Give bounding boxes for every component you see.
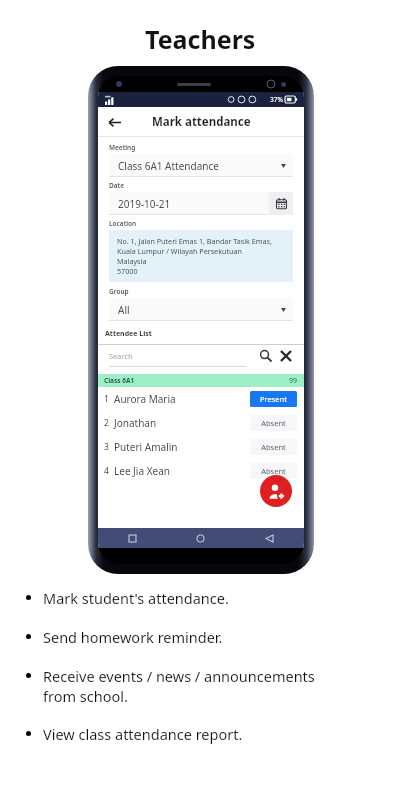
staticText: Teachers [145, 22, 256, 56]
staticText: Class 6A1 [104, 376, 135, 385]
button[interactable]: Back [103, 111, 125, 133]
staticText: Mark attendance [152, 114, 251, 130]
staticText: Attendee List [105, 329, 152, 339]
staticText: Absent [261, 418, 286, 428]
staticText: View class attendance report. [43, 724, 243, 744]
staticText: Date [109, 181, 125, 190]
staticText: All [118, 303, 130, 317]
button[interactable]: 2 [98, 411, 304, 435]
staticText: Location [109, 219, 137, 228]
staticText: Search [109, 351, 133, 361]
staticText: Absent [261, 442, 286, 452]
staticText: Aurora Maria [114, 392, 250, 406]
staticText: 2 [104, 417, 109, 429]
button[interactable]: 1 [98, 387, 304, 411]
staticText: Absent [261, 466, 286, 476]
button[interactable]: Absent [250, 439, 297, 455]
button[interactable]: Add attendee [260, 475, 292, 507]
staticText: Send homework reminder. [43, 627, 223, 647]
button[interactable]: Absent [250, 415, 297, 431]
staticText: 2019-10-21 [118, 197, 171, 211]
button[interactable]: All [109, 298, 293, 321]
staticText: Class 6A1 Attendance [118, 159, 219, 173]
staticText: Present [260, 394, 287, 404]
button[interactable]: Absent [250, 463, 297, 479]
staticText: Jonathan [114, 416, 250, 430]
button[interactable]: 3 [98, 435, 304, 459]
staticText: 99 [289, 376, 298, 386]
staticText: Group [109, 287, 129, 296]
staticText: Lee Jia Xean [114, 464, 250, 478]
staticText: 4 [104, 465, 109, 477]
staticText: Receive events / news / announcements fr… [43, 666, 315, 707]
button[interactable]: Recents [98, 528, 166, 548]
button[interactable]: Search [257, 347, 275, 365]
button[interactable]: Pick date [269, 192, 293, 215]
staticText: Mark student's attendance. [43, 588, 229, 608]
button[interactable]: Back [235, 528, 304, 548]
staticText: 37% [270, 95, 283, 104]
button[interactable]: Clear [277, 347, 295, 365]
button[interactable]: Present [250, 391, 297, 407]
staticText: Puteri Amalin [114, 440, 250, 454]
staticText: 3 [104, 441, 109, 453]
button[interactable]: 4 [98, 459, 304, 483]
button[interactable]: Home [166, 528, 235, 548]
staticText: 1 [104, 393, 109, 405]
button[interactable]: Search [109, 345, 255, 367]
button[interactable]: Class 6A1 [104, 374, 298, 387]
staticText: Meeting [109, 143, 136, 152]
staticText: No. 1, Jalan Puteri Emas 1, Bandar Tasik… [117, 236, 272, 276]
button[interactable]: Class 6A1 Attendance [109, 154, 293, 177]
button[interactable]: 2019-10-21 [109, 192, 269, 215]
